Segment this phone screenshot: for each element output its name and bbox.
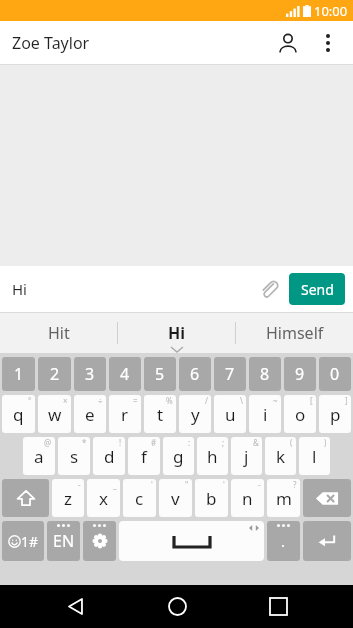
button[interactable]: e	[74, 395, 106, 433]
button[interactable]: u	[214, 395, 246, 433]
button[interactable]: d	[93, 437, 125, 475]
button[interactable]: 4	[109, 357, 141, 391]
button[interactable]: c	[123, 479, 156, 517]
staticText: 10:00	[314, 2, 348, 20]
button[interactable]: 0	[319, 357, 351, 391]
staticText: n	[242, 487, 253, 510]
staticText: [	[310, 395, 313, 406]
staticText: j	[244, 445, 249, 468]
staticText: x	[99, 487, 108, 510]
staticText: °	[28, 395, 32, 406]
button[interactable]: l	[299, 437, 330, 475]
button[interactable]: Back	[48, 585, 102, 628]
button[interactable]: 2	[38, 357, 71, 391]
button[interactable]: h	[197, 437, 228, 475]
staticText: "	[185, 479, 189, 490]
button[interactable]: Symbols	[2, 521, 44, 561]
staticText: e	[85, 403, 95, 426]
staticText: Himself	[266, 322, 324, 344]
staticText: 8	[260, 363, 270, 385]
button[interactable]: Himself	[236, 312, 353, 353]
button[interactable]: More options	[309, 24, 347, 62]
button[interactable]: n	[231, 479, 264, 517]
staticText: ÷	[98, 395, 103, 406]
button[interactable]: v	[159, 479, 192, 517]
button[interactable]: t	[144, 395, 176, 433]
button[interactable]: r	[109, 395, 141, 433]
staticText: t	[157, 403, 164, 426]
button[interactable]: 8	[249, 357, 281, 391]
button[interactable]: f	[128, 437, 160, 475]
button[interactable]: 9	[284, 357, 316, 391]
staticText: v	[171, 487, 180, 510]
staticText: ;	[222, 437, 225, 448]
button[interactable]: j	[231, 437, 262, 475]
staticText: EN	[53, 530, 75, 552]
staticText: .	[281, 531, 286, 551]
staticText: Zoe Taylor	[12, 32, 90, 54]
staticText: -	[258, 479, 261, 490]
staticText: #	[151, 437, 157, 448]
staticText: !	[119, 437, 122, 448]
button[interactable]: Attach	[252, 272, 286, 306]
staticText: /	[205, 395, 208, 406]
staticText: k	[276, 445, 286, 468]
button[interactable]: EN	[47, 521, 80, 561]
button[interactable]: z	[52, 479, 84, 517]
staticText: u	[225, 403, 236, 426]
staticText: Hit	[48, 322, 70, 344]
staticText: )	[324, 437, 327, 448]
button[interactable]: 3	[74, 357, 106, 391]
staticText: q	[13, 403, 24, 426]
staticText: Hi	[168, 322, 186, 344]
button[interactable]: 7	[214, 357, 246, 391]
staticText: b	[206, 487, 217, 510]
button[interactable]: Recents	[251, 585, 305, 628]
staticText: 5	[155, 363, 165, 385]
staticText: g	[173, 445, 184, 468]
button[interactable]: 1	[2, 357, 35, 391]
button[interactable]: 5	[144, 357, 176, 391]
button[interactable]: Settings	[83, 521, 116, 561]
button[interactable]: Space	[119, 521, 264, 561]
button[interactable]: g	[163, 437, 194, 475]
button[interactable]: Enter	[303, 521, 351, 561]
button[interactable]: 6	[179, 357, 211, 391]
button[interactable]: Hi	[118, 312, 235, 353]
staticText: 7	[225, 363, 235, 385]
staticText: ]	[345, 395, 348, 406]
button[interactable]: m	[267, 479, 300, 517]
staticText: f	[141, 445, 147, 468]
button[interactable]: Home	[150, 585, 204, 628]
button[interactable]: x	[87, 479, 120, 517]
staticText: 4	[120, 363, 130, 385]
staticText: ×	[63, 395, 68, 406]
staticText: (	[290, 437, 293, 448]
button[interactable]: w	[38, 395, 71, 433]
staticText: w	[48, 403, 62, 426]
button[interactable]: o	[284, 395, 316, 433]
staticText: -	[78, 479, 81, 490]
staticText: 0	[330, 363, 340, 385]
button[interactable]: a	[23, 437, 55, 475]
button[interactable]: i	[249, 395, 281, 433]
staticText: _	[113, 479, 117, 490]
staticText: p	[330, 403, 341, 426]
button[interactable]: Hit	[0, 312, 117, 353]
button[interactable]: y	[179, 395, 211, 433]
button[interactable]: q	[2, 395, 35, 433]
staticText: l	[312, 445, 317, 468]
button[interactable]: p	[319, 395, 351, 433]
button[interactable]: Shift	[2, 479, 49, 517]
button[interactable]: s	[58, 437, 90, 475]
staticText: 2	[50, 363, 60, 385]
button[interactable]: b	[195, 479, 228, 517]
button[interactable]: Contact	[267, 22, 309, 64]
button[interactable]: Backspace	[303, 479, 351, 517]
button[interactable]: k	[265, 437, 296, 475]
staticText: 9	[295, 363, 305, 385]
staticText: h	[207, 445, 218, 468]
button[interactable]: .	[267, 521, 300, 561]
staticText: i	[263, 403, 268, 426]
button[interactable]: Send	[289, 273, 345, 305]
